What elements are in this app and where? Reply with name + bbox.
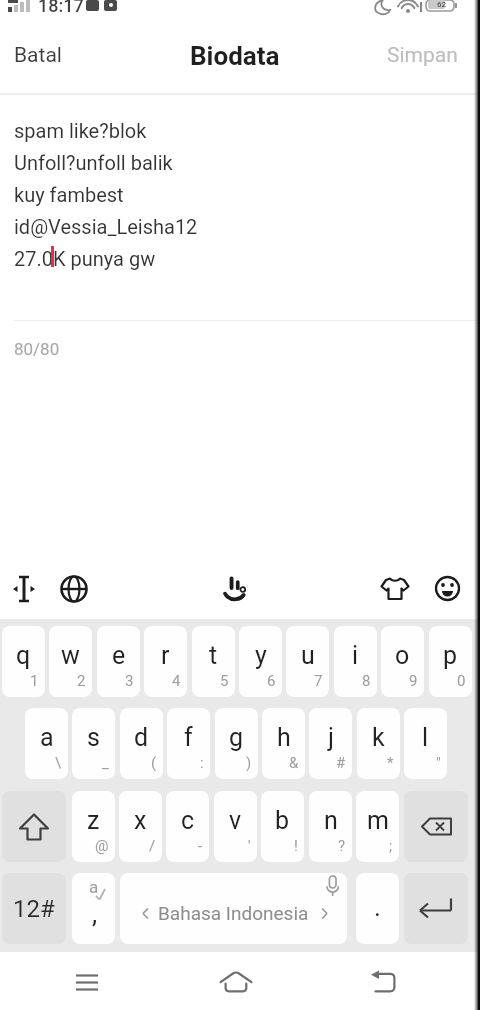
button[interactable]: e xyxy=(97,626,140,697)
staticText: r xyxy=(161,641,170,670)
button[interactable]: o xyxy=(381,626,424,697)
button[interactable]: b xyxy=(261,791,304,862)
staticText: b xyxy=(275,806,290,835)
button[interactable]: g xyxy=(215,708,258,779)
button[interactable] xyxy=(64,963,110,1003)
staticText: Bahasa Indonesia xyxy=(158,902,309,924)
button[interactable]: w xyxy=(49,626,92,697)
staticText: 8 xyxy=(362,672,371,690)
staticText: ? xyxy=(338,837,346,855)
staticText: - xyxy=(198,837,203,855)
button[interactable]: q xyxy=(2,626,45,697)
button[interactable]: t xyxy=(192,626,235,697)
staticText: h xyxy=(277,723,291,752)
button[interactable]: Bahasa Indonesia xyxy=(120,873,347,944)
staticText: . xyxy=(374,892,381,922)
button[interactable]: . xyxy=(356,873,399,944)
button[interactable]: y xyxy=(239,626,282,697)
button[interactable]: s xyxy=(72,708,115,779)
button[interactable]: Batal xyxy=(14,43,62,68)
staticText: 6 xyxy=(267,672,276,690)
staticText: i xyxy=(352,641,359,670)
staticText: z xyxy=(87,806,100,835)
button[interactable] xyxy=(212,963,258,1003)
staticText: & xyxy=(289,754,299,772)
staticText: , xyxy=(92,899,98,929)
staticText: s xyxy=(87,723,100,752)
staticText: y xyxy=(255,641,267,670)
staticText: * xyxy=(387,754,394,772)
staticText: f xyxy=(184,723,193,752)
staticText: 18:17 xyxy=(38,0,84,16)
staticText: m xyxy=(367,806,389,835)
staticText: Unfoll?unfoll balik xyxy=(14,151,173,174)
staticText: a xyxy=(40,723,54,752)
button[interactable] xyxy=(6,570,44,608)
button[interactable] xyxy=(56,570,94,608)
button[interactable]: u xyxy=(286,626,329,697)
button[interactable]: n xyxy=(309,791,352,862)
staticText: " xyxy=(436,754,441,772)
staticText: l xyxy=(422,723,429,752)
staticText: g xyxy=(229,723,244,752)
staticText: Batal xyxy=(14,43,62,68)
button[interactable]: i xyxy=(334,626,377,697)
button[interactable] xyxy=(404,873,468,944)
staticText: q xyxy=(16,641,31,670)
staticText: ) xyxy=(246,754,252,772)
staticText: \ xyxy=(55,754,62,772)
button[interactable]: x xyxy=(119,791,162,862)
staticText: 2 xyxy=(77,672,86,690)
staticText: c xyxy=(181,806,195,835)
button[interactable]: a xyxy=(72,873,115,944)
button[interactable]: r xyxy=(144,626,187,697)
button[interactable] xyxy=(376,570,414,608)
staticText: 4 xyxy=(172,672,181,690)
button[interactable] xyxy=(360,963,406,1003)
button[interactable]: 12# xyxy=(2,873,66,944)
staticText: w xyxy=(61,641,80,670)
button[interactable]: d xyxy=(120,708,163,779)
button[interactable]: l xyxy=(404,708,447,779)
staticText: _ xyxy=(102,754,109,772)
staticText: j xyxy=(328,723,334,752)
staticText: 0 xyxy=(457,672,466,690)
button[interactable]: Simpan xyxy=(387,43,458,68)
staticText: 12# xyxy=(13,895,55,923)
staticText: : xyxy=(200,754,204,772)
staticText: o xyxy=(395,641,410,670)
staticText: 27.0K punya gw xyxy=(14,247,156,270)
button[interactable]: m xyxy=(356,791,399,862)
staticText: 62 xyxy=(437,0,447,9)
button[interactable] xyxy=(428,570,466,608)
staticText: n xyxy=(324,806,338,835)
button[interactable] xyxy=(216,570,256,608)
staticText: id@Vessia_Leisha12 xyxy=(14,215,198,238)
button[interactable] xyxy=(0,95,474,319)
staticText: p xyxy=(443,641,458,670)
staticText: spam like?blok xyxy=(14,119,147,142)
staticText: 7 xyxy=(314,672,323,690)
staticText: x xyxy=(134,806,147,835)
button[interactable] xyxy=(2,791,66,862)
staticText: 1 xyxy=(30,672,39,690)
staticText: # xyxy=(336,754,346,772)
staticText: kuy fambest xyxy=(14,183,124,206)
staticText: k xyxy=(372,723,385,752)
button[interactable]: c xyxy=(166,791,209,862)
staticText: ' xyxy=(248,837,251,855)
staticText: u xyxy=(301,641,315,670)
staticText: Biodata xyxy=(190,41,280,71)
button[interactable]: a xyxy=(25,708,68,779)
button[interactable]: h xyxy=(262,708,305,779)
staticText: Simpan xyxy=(387,43,458,68)
button[interactable]: v xyxy=(214,791,257,862)
button[interactable]: z xyxy=(72,791,115,862)
button[interactable]: j xyxy=(309,708,352,779)
button[interactable]: k xyxy=(357,708,400,779)
staticText: d xyxy=(134,723,149,752)
button[interactable] xyxy=(404,791,468,862)
button[interactable]: p xyxy=(429,626,472,697)
button[interactable]: f xyxy=(167,708,210,779)
staticText: 3 xyxy=(125,672,134,690)
